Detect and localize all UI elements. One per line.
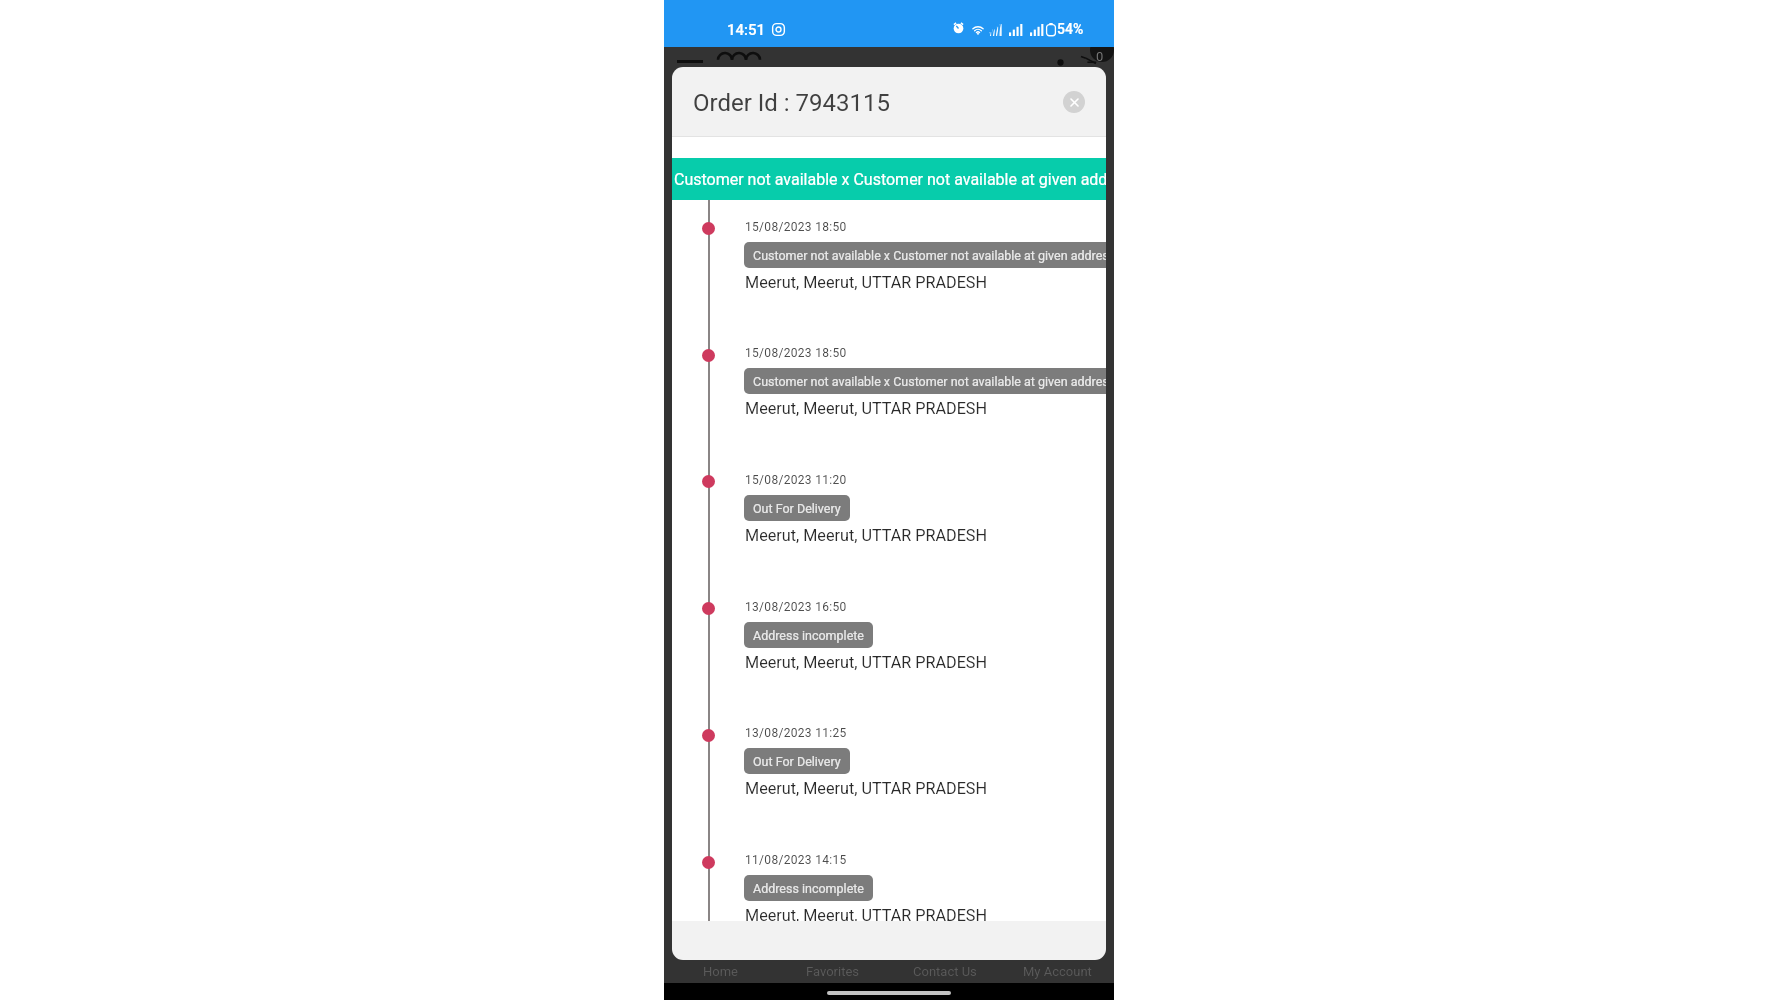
staticText: 54%	[1057, 21, 1084, 37]
staticText: Order Id : 7943115	[693, 89, 890, 117]
staticText: My Account	[1023, 964, 1092, 979]
staticText: 14:51	[727, 21, 766, 39]
staticText: 11/08/2023 14:15	[745, 853, 847, 867]
staticText: 13/08/2023 11:25	[745, 726, 847, 740]
staticText: Customer not available x Customer not av…	[753, 248, 1106, 263]
staticText: Home	[703, 964, 738, 979]
button[interactable]	[672, 842, 1106, 921]
button[interactable]: Open navigation menu	[669, 50, 711, 74]
staticText: Customer not available x Customer not av…	[753, 374, 1106, 389]
staticText: Meerut, Meerut, UTTAR PRADESH	[745, 779, 988, 798]
button[interactable]: My Account	[1001, 960, 1114, 983]
button[interactable]	[672, 462, 1106, 572]
staticText: Meerut, Meerut, UTTAR PRADESH	[745, 906, 988, 921]
button[interactable]: Favorites	[776, 960, 888, 983]
staticText: Meerut, Meerut, UTTAR PRADESH	[745, 273, 988, 292]
staticText: Contact Us	[913, 964, 977, 979]
staticText: Out For Delivery	[753, 501, 841, 516]
button[interactable]: Contact Us	[888, 960, 1001, 983]
staticText: Address incomplete	[753, 628, 864, 643]
button[interactable]	[672, 715, 1106, 825]
button[interactable]	[672, 589, 1106, 699]
button[interactable]: Home	[664, 960, 776, 983]
staticText: Favorites	[806, 964, 859, 979]
staticText: Out For Delivery	[753, 754, 841, 769]
staticText: Meerut, Meerut, UTTAR PRADESH	[745, 526, 988, 545]
staticText: Address incomplete	[753, 881, 864, 896]
staticText: 13/08/2023 16:50	[745, 600, 847, 614]
button[interactable]: Cart	[1076, 46, 1114, 74]
button[interactable]	[672, 335, 1106, 445]
staticText: Customer not available x Customer not av…	[674, 170, 1106, 189]
staticText: 15/08/2023 18:50	[745, 220, 847, 234]
staticText: 15/08/2023 11:20	[745, 473, 847, 487]
button[interactable]	[672, 209, 1106, 319]
staticText: 15/08/2023 18:50	[745, 346, 847, 360]
button[interactable]: Close	[1063, 91, 1085, 113]
staticText: Meerut, Meerut, UTTAR PRADESH	[745, 653, 988, 672]
staticText: Meerut, Meerut, UTTAR PRADESH	[745, 399, 988, 418]
staticText: 0	[1096, 49, 1104, 62]
